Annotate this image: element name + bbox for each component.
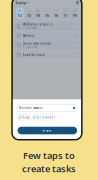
staticText: Work out xyxy=(22,34,34,38)
staticText: T xyxy=(46,9,47,12)
staticText: Dinner with friends xyxy=(22,42,50,45)
staticText: Today xyxy=(15,0,26,5)
staticText: Book the vacation xyxy=(19,106,43,110)
button[interactable]: Set reminder xyxy=(32,115,56,120)
staticText: M xyxy=(18,9,20,12)
button[interactable]: Today xyxy=(18,115,30,120)
button[interactable]: Dinner with friends xyxy=(15,41,79,50)
button[interactable]: T xyxy=(25,7,33,19)
button[interactable]: T xyxy=(43,7,51,19)
button[interactable]: S xyxy=(61,7,69,19)
button[interactable]: More options xyxy=(76,1,79,4)
staticText: 16 xyxy=(54,12,58,18)
button[interactable]: Meditation session 2 xyxy=(15,22,79,31)
button[interactable]: Save xyxy=(18,127,77,134)
button[interactable]: F xyxy=(52,7,60,19)
staticText: S xyxy=(74,9,75,12)
staticText: 14 xyxy=(36,12,40,18)
staticText: 07:30 AM xyxy=(22,26,36,30)
staticText: 17 xyxy=(63,12,67,18)
staticText: Today xyxy=(22,116,29,119)
button[interactable]: W xyxy=(34,7,42,19)
staticText: 12 xyxy=(17,12,21,18)
staticText: 18 xyxy=(72,12,76,18)
staticText: T xyxy=(28,9,29,12)
button[interactable]: Today xyxy=(15,0,30,5)
staticText: W xyxy=(37,9,39,12)
staticText: Save xyxy=(46,129,52,132)
staticText: create tasks xyxy=(22,162,76,175)
staticText: Read the book xyxy=(22,53,44,57)
staticText: Few taps to xyxy=(23,149,75,162)
staticText: 13 xyxy=(27,12,31,18)
button[interactable]: S xyxy=(70,7,78,19)
staticText: S xyxy=(65,9,66,12)
staticText: 15 xyxy=(45,12,49,18)
staticText: Set reminder xyxy=(37,116,55,119)
button[interactable]: Read the book xyxy=(15,51,79,59)
staticText: Meditation session 2 xyxy=(22,23,52,26)
button[interactable]: M xyxy=(16,7,23,19)
staticText: F xyxy=(56,9,57,12)
button[interactable]: Work out xyxy=(15,32,79,39)
staticText: 07:00 PM xyxy=(22,45,36,49)
